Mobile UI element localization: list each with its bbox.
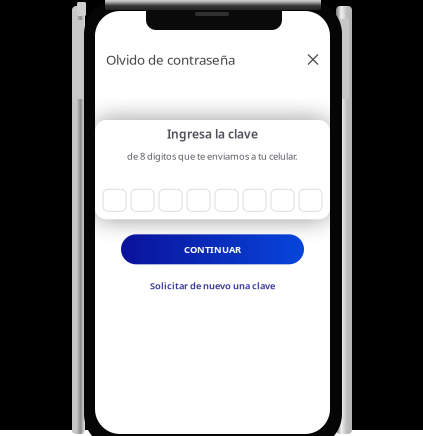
button[interactable]: Cerrar (301, 47, 325, 71)
staticText: Ingresa la clave (167, 126, 258, 142)
button[interactable]: Solicitar de nuevo una clave (140, 274, 285, 297)
staticText: CONTINUAR (184, 243, 241, 255)
button[interactable]: CONTINUAR (121, 234, 304, 264)
staticText: de 8 digitos que te enviamos a tu celula… (127, 150, 298, 162)
staticText: Solicitar de nuevo una clave (150, 279, 275, 292)
staticText: Olvido de contraseña (106, 51, 235, 68)
